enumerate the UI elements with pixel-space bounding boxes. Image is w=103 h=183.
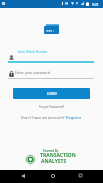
staticText: Enter Mobile Number	[18, 50, 48, 54]
staticText: Powered By	[43, 149, 59, 153]
button[interactable]: LOGIN	[13, 88, 90, 99]
staticText: LOGIN	[47, 92, 57, 96]
staticText: N	[2, 1, 6, 6]
button[interactable]: Recent apps	[71, 169, 89, 182]
staticText: TRANSACTION	[40, 152, 76, 159]
button[interactable]: Forgot Password?	[0, 102, 103, 111]
staticText: ANALYSTS	[41, 158, 67, 165]
button[interactable]: Home	[44, 169, 62, 182]
button[interactable]: Back	[14, 169, 32, 182]
staticText: Don't have an account?	[21, 115, 66, 120]
staticText: Enter your password	[15, 70, 50, 75]
button[interactable]: Register	[66, 115, 82, 120]
staticText: Forgot Password?	[39, 105, 64, 109]
staticText: 9:31	[92, 2, 99, 7]
